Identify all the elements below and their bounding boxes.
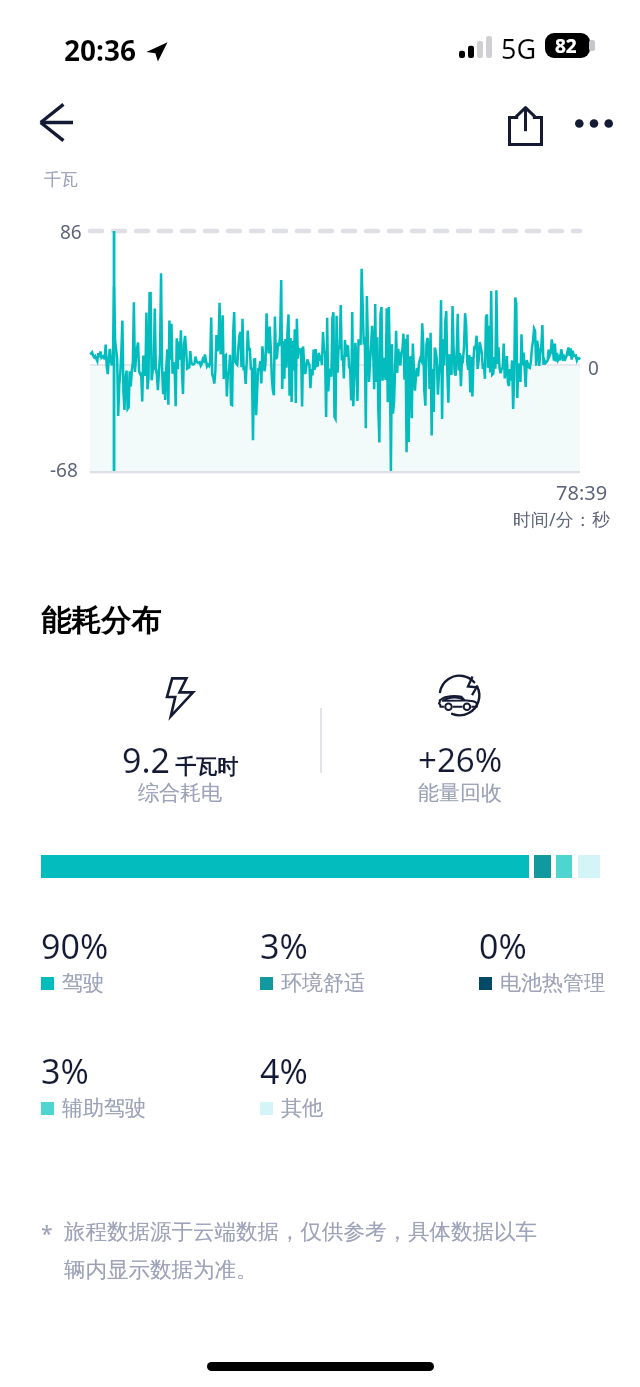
- staticText: *: [41, 1219, 53, 1248]
- button[interactable]: Share: [489, 90, 561, 162]
- staticText: 千瓦时: [175, 754, 238, 780]
- staticText: 5G: [501, 30, 537, 67]
- staticText: 0%: [479, 923, 527, 969]
- staticText: 78:39: [556, 479, 608, 506]
- staticText: +26%: [418, 737, 503, 782]
- staticText: 环境舒适: [281, 970, 365, 996]
- staticText: 其他: [281, 1095, 323, 1121]
- staticText: 驾驶: [62, 970, 104, 996]
- staticText: 4%: [260, 1048, 308, 1094]
- staticText: 3%: [260, 923, 308, 969]
- staticText: 86: [60, 219, 82, 245]
- button[interactable]: Back: [24, 90, 88, 154]
- staticText: 能耗分布: [41, 602, 161, 640]
- staticText: 旅程数据源于云端数据，仅供参考，具体数据以车: [64, 1218, 537, 1245]
- staticText: 3%: [41, 1048, 89, 1094]
- staticText: 20:36: [64, 31, 136, 69]
- staticText: -68: [50, 457, 78, 483]
- staticText: 千瓦: [44, 169, 78, 190]
- staticText: 综合耗电: [138, 780, 222, 806]
- staticText: 辅助驾驶: [62, 1095, 146, 1121]
- staticText: 9.2: [122, 737, 171, 783]
- staticText: 0: [588, 355, 599, 381]
- staticText: 82: [555, 33, 577, 58]
- staticText: 电池热管理: [500, 970, 605, 996]
- staticText: 辆内显示数据为准。: [64, 1256, 258, 1283]
- staticText: 时间/分：秒: [513, 507, 610, 532]
- button[interactable]: More options: [562, 91, 626, 155]
- staticText: 能量回收: [418, 780, 502, 806]
- staticText: 90%: [41, 923, 109, 969]
